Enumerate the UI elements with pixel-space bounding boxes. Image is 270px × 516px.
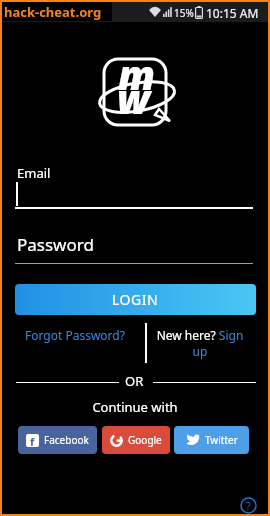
button[interactable]: Google [102,426,170,454]
staticText: Twitter [205,433,238,447]
staticText: Facebook [44,433,89,447]
staticText: w [117,71,150,125]
staticText: Forgot Password? [25,327,125,343]
button[interactable]: f [18,426,97,454]
staticText: 10:15 AM [206,5,259,21]
button[interactable]: Forgot Password? [10,320,140,350]
staticText: ? [246,498,251,513]
staticText: m [118,47,156,101]
button[interactable]: New here? Sign up [148,327,252,365]
staticText: Google [128,433,162,447]
staticText: Continue with [2,398,268,416]
button[interactable]: ? [240,497,257,514]
staticText: LOGIN [112,290,159,309]
staticText: hack-cheat.org [4,3,102,21]
staticText: 15% [174,6,194,20]
staticText: Email [17,164,51,182]
staticText: f [30,434,35,447]
staticText: Password [17,233,94,256]
staticText: New here? Sign up [148,327,252,359]
button[interactable]: LOGIN [15,284,256,315]
button[interactable]: Twitter [174,426,249,454]
staticText: OR [125,372,144,390]
